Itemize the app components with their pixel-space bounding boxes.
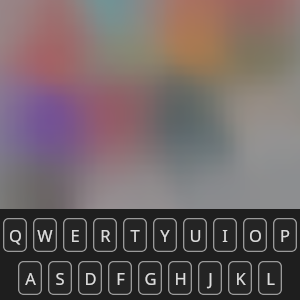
staticText: H — [174, 267, 187, 289]
staticText: J — [208, 267, 213, 289]
button[interactable]: O — [243, 218, 267, 252]
staticText: G — [144, 267, 157, 289]
button[interactable]: U — [183, 218, 207, 252]
staticText: T — [130, 224, 140, 246]
staticText: Q — [9, 224, 22, 246]
staticText: Y — [160, 224, 170, 246]
staticText: D — [84, 267, 97, 289]
button[interactable]: R — [93, 218, 117, 252]
button[interactable]: F — [108, 261, 132, 295]
button[interactable]: A — [18, 261, 42, 295]
button[interactable]: H — [168, 261, 192, 295]
button[interactable]: J — [198, 261, 222, 295]
button[interactable]: G — [138, 261, 162, 295]
staticText: F — [116, 267, 125, 289]
button[interactable]: P — [273, 218, 297, 252]
button[interactable]: E — [63, 218, 87, 252]
button[interactable]: Y — [153, 218, 177, 252]
button[interactable]: L — [258, 261, 282, 295]
staticText: S — [55, 267, 65, 289]
button[interactable]: W — [33, 218, 57, 252]
button[interactable]: S — [48, 261, 72, 295]
staticText: K — [235, 267, 246, 289]
staticText: U — [189, 224, 202, 246]
staticText: L — [266, 267, 275, 289]
staticText: I — [222, 224, 228, 246]
staticText: O — [249, 224, 262, 246]
button[interactable]: D — [78, 261, 102, 295]
staticText: A — [25, 267, 36, 289]
staticText: P — [280, 224, 290, 246]
staticText: E — [70, 224, 80, 246]
staticText: W — [37, 224, 53, 246]
staticText: R — [100, 224, 111, 246]
button[interactable]: Q — [3, 218, 27, 252]
button[interactable]: K — [228, 261, 252, 295]
button[interactable]: T — [123, 218, 147, 252]
button[interactable]: I — [213, 218, 237, 252]
